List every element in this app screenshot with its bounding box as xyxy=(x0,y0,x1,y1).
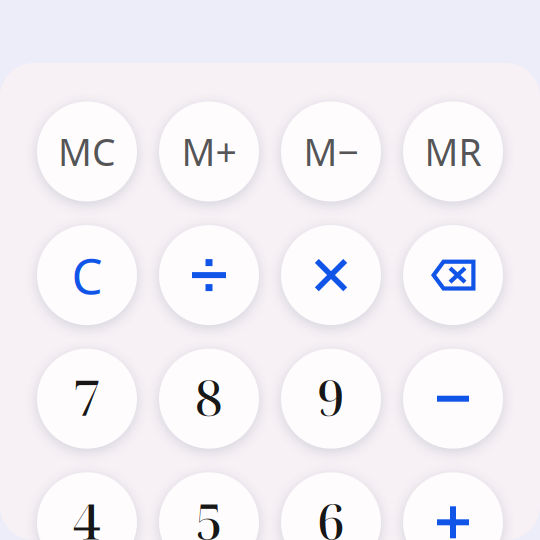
button[interactable]: Minus xyxy=(403,349,503,449)
button[interactable]: Divide xyxy=(159,225,259,325)
staticText: 8 xyxy=(195,363,223,430)
staticText: 4 xyxy=(73,487,101,540)
button[interactable]: 8 xyxy=(159,349,259,449)
button[interactable]: 5 xyxy=(159,472,259,540)
button[interactable]: MC xyxy=(37,101,137,201)
button[interactable]: Plus xyxy=(403,472,503,540)
staticText: 6 xyxy=(317,487,345,540)
button[interactable]: 9 xyxy=(281,349,381,449)
button[interactable]: Multiply xyxy=(281,225,381,325)
button[interactable]: Delete xyxy=(403,225,503,325)
button[interactable]: MR xyxy=(403,101,503,201)
staticText: M− xyxy=(303,127,358,176)
staticText: M+ xyxy=(181,127,236,176)
button[interactable]: 4 xyxy=(37,472,137,540)
staticText: MR xyxy=(424,127,481,176)
staticText: 9 xyxy=(317,363,345,430)
button[interactable]: M+ xyxy=(159,101,259,201)
button[interactable]: M− xyxy=(281,101,381,201)
button[interactable]: 6 xyxy=(281,472,381,540)
staticText: 7 xyxy=(73,363,101,430)
staticText: 5 xyxy=(195,487,223,540)
staticText: MC xyxy=(58,127,116,176)
button[interactable]: 7 xyxy=(37,349,137,449)
button[interactable]: C xyxy=(37,225,137,325)
staticText: C xyxy=(71,242,102,308)
